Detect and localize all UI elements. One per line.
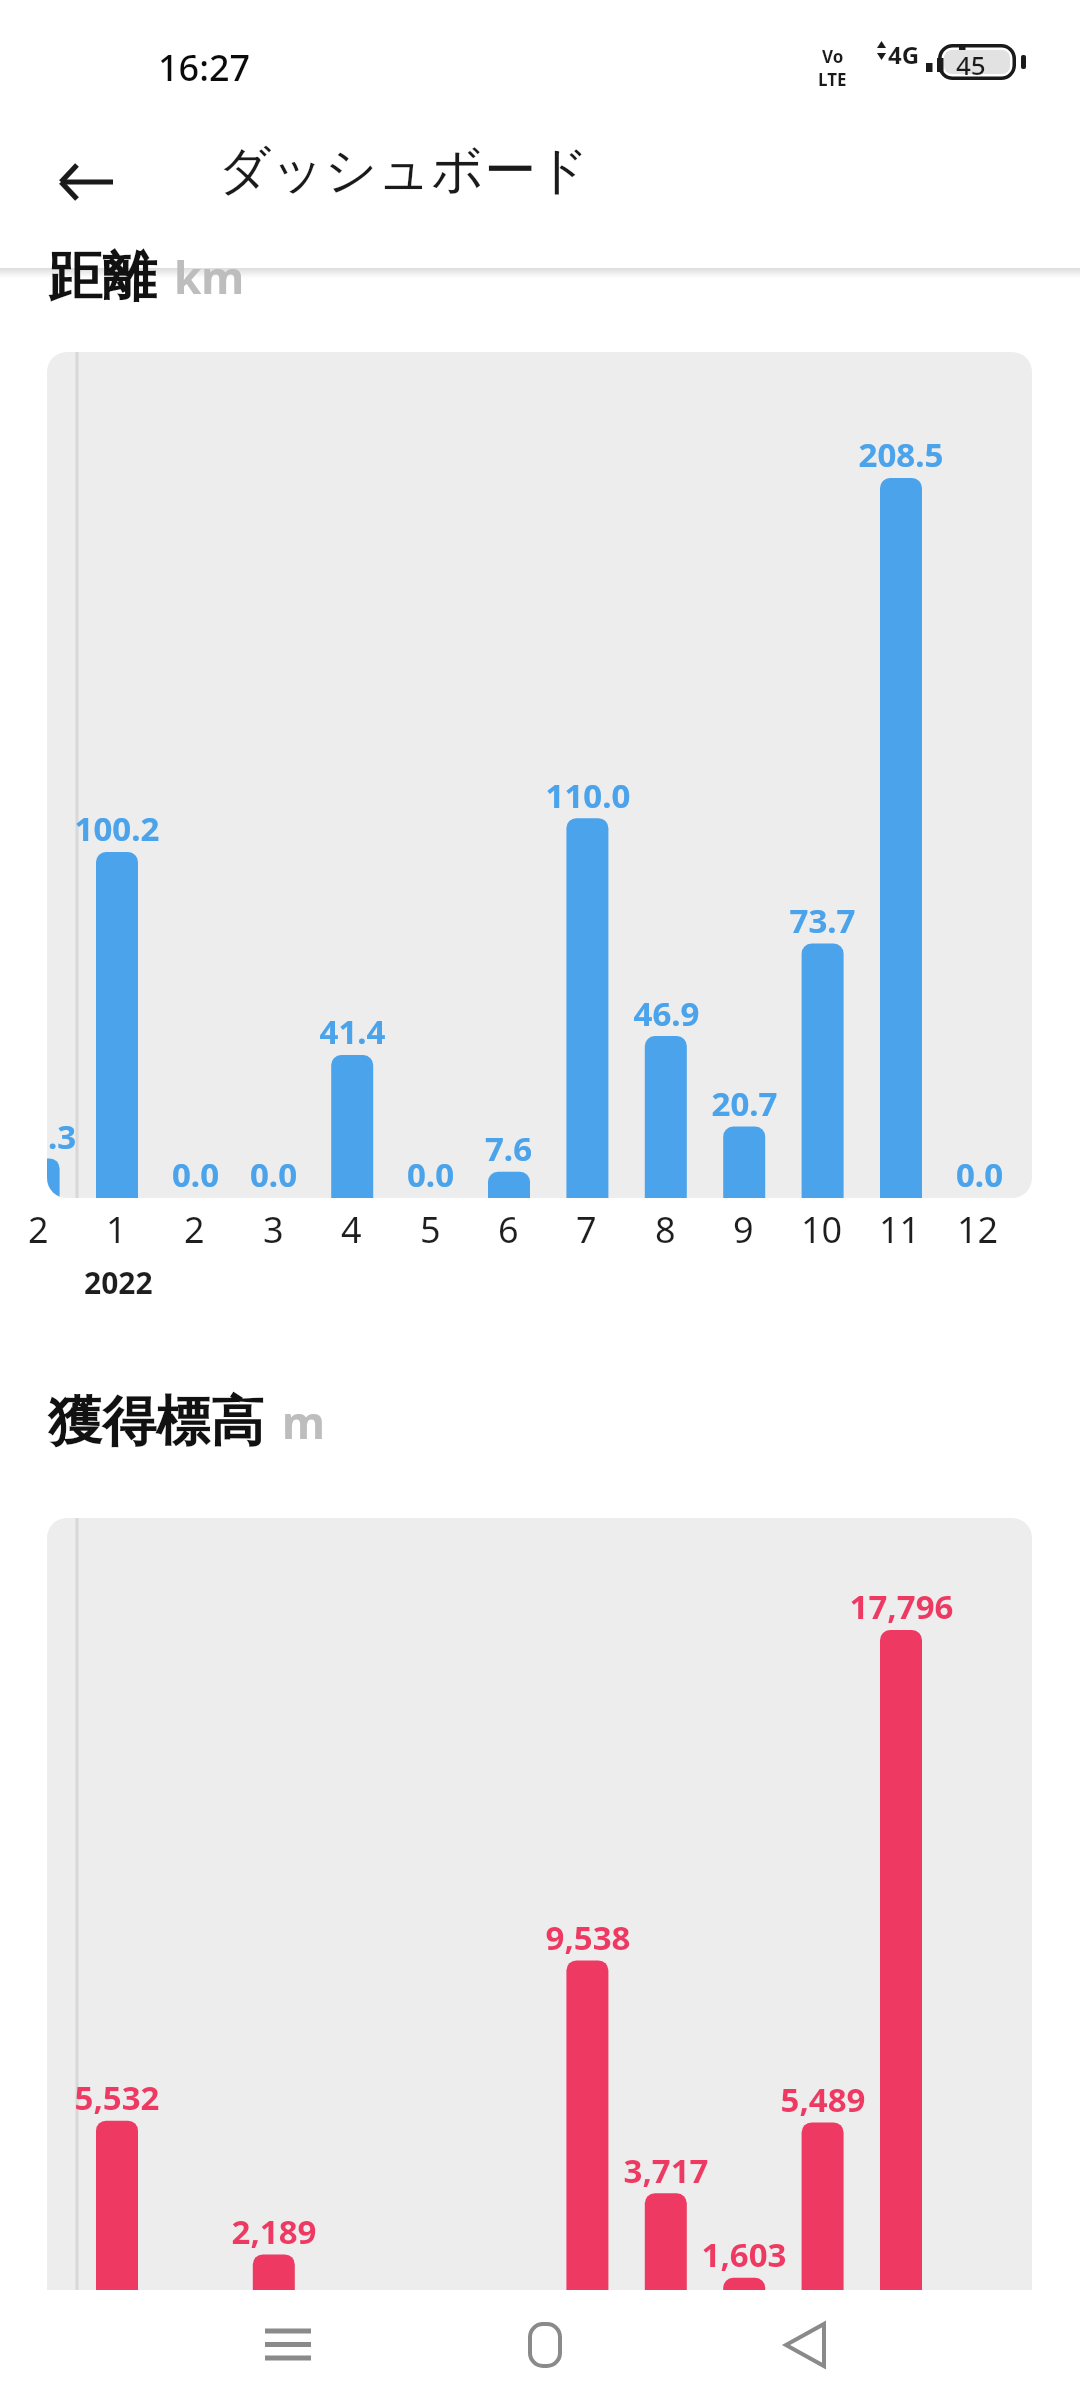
- staticText: 1,603: [696, 2232, 792, 2277]
- button[interactable]: [47, 1518, 1032, 2342]
- staticText: 0.0: [951, 1152, 1008, 1197]
- staticText: 5,489: [775, 2077, 871, 2122]
- button[interactable]: Back: [38, 134, 134, 230]
- staticText: 2: [28, 1205, 49, 1254]
- staticText: 10: [801, 1205, 843, 1254]
- staticText: 2,189: [226, 2209, 322, 2254]
- staticText: Vo: [822, 45, 844, 68]
- button[interactable]: Back: [745, 2295, 865, 2395]
- staticText: LTE: [818, 68, 847, 91]
- staticText: 0.0: [167, 1152, 224, 1197]
- staticText: 5: [420, 1205, 441, 1254]
- staticText: m: [282, 1392, 325, 1452]
- staticText: ダッシュボード: [218, 138, 590, 204]
- staticText: 11: [879, 1205, 921, 1254]
- staticText: .3: [48, 1114, 77, 1159]
- staticText: 5,532: [69, 2075, 165, 2120]
- staticText: 16:27: [158, 43, 251, 92]
- staticText: 6: [498, 1205, 519, 1254]
- staticText: 8: [655, 1205, 676, 1254]
- staticText: 45: [956, 47, 986, 82]
- staticText: 獲得標高: [48, 1388, 264, 1456]
- staticText: 208.5: [853, 432, 949, 477]
- staticText: 3: [263, 1205, 284, 1254]
- staticText: 110.0: [540, 773, 636, 818]
- staticText: 9,538: [540, 1915, 636, 1960]
- staticText: 0.0: [245, 1152, 302, 1197]
- staticText: 7: [576, 1205, 597, 1254]
- staticText: 1: [106, 1205, 127, 1254]
- button[interactable]: Recent apps: [228, 2295, 348, 2395]
- staticText: km: [174, 247, 245, 307]
- staticText: 4: [341, 1205, 362, 1254]
- staticText: 距離: [48, 243, 156, 311]
- button[interactable]: [47, 352, 1032, 1198]
- staticText: 2022: [84, 1262, 153, 1303]
- staticText: 46.9: [628, 991, 705, 1036]
- staticText: 9: [733, 1205, 754, 1254]
- staticText: 41.4: [314, 1009, 391, 1054]
- staticText: 20.7: [706, 1081, 783, 1126]
- staticText: 2: [184, 1205, 205, 1254]
- staticText: 4G: [888, 38, 920, 71]
- staticText: 7.6: [480, 1126, 537, 1171]
- staticText: 100.2: [69, 806, 165, 851]
- staticText: 73.7: [784, 898, 861, 943]
- staticText: 3,717: [618, 2148, 714, 2193]
- button[interactable]: Home: [485, 2295, 605, 2395]
- staticText: 17,796: [844, 1584, 959, 1629]
- staticText: 0.0: [402, 1152, 459, 1197]
- staticText: 12: [957, 1205, 999, 1254]
